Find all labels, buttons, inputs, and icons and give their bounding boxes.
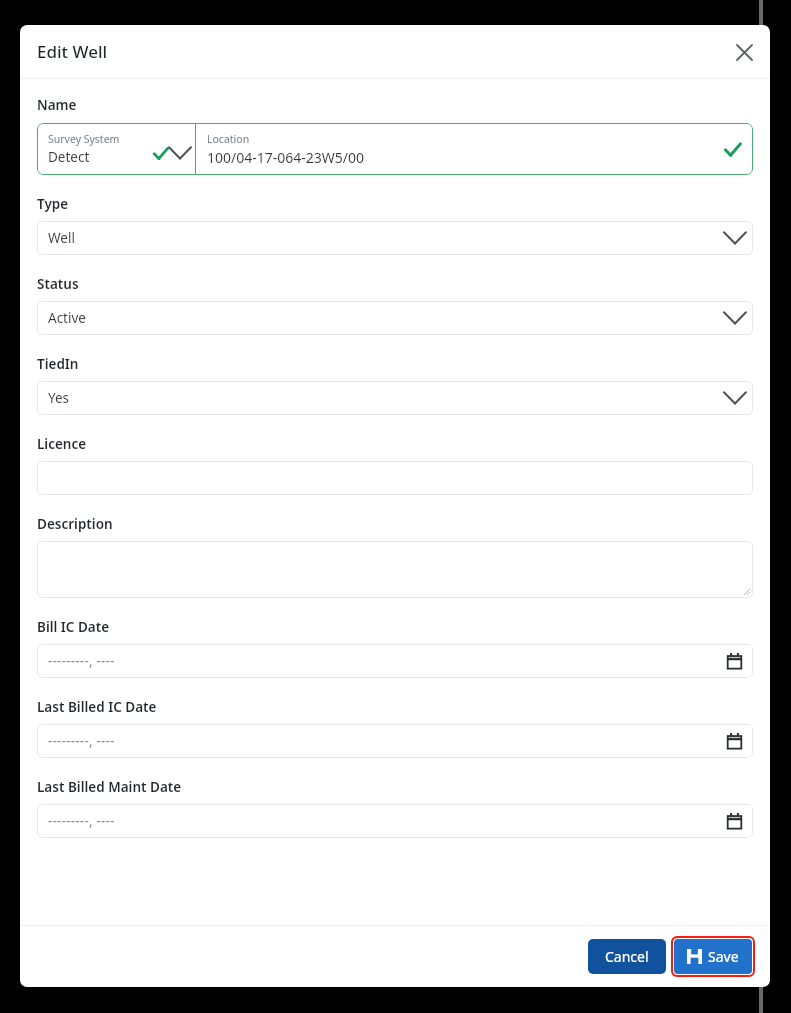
staticText: TiedIn [37, 355, 79, 373]
staticText: ---------, ---- [48, 812, 115, 830]
button[interactable]: Location [196, 123, 753, 175]
staticText: Yes [48, 389, 70, 407]
staticText: Survey System [48, 132, 120, 146]
staticText: Well [48, 229, 75, 247]
staticText: Bill IC Date [37, 618, 110, 636]
staticText: Last Billed Maint Date [37, 778, 182, 796]
button[interactable]: Yes [37, 381, 753, 415]
staticText: 100/04-17-064-23W5/00 [207, 148, 365, 167]
staticText: ---------, ---- [48, 732, 115, 750]
button[interactable] [37, 461, 753, 495]
button[interactable]: Well [37, 221, 753, 255]
button[interactable]: ---------, ---- [37, 724, 753, 758]
staticText: Location [207, 132, 250, 146]
other: Open calendar [726, 653, 743, 670]
staticText: Edit Well [37, 40, 108, 63]
staticText: ---------, ---- [48, 652, 115, 670]
staticText: Type [37, 195, 69, 213]
staticText: Cancel [605, 947, 649, 966]
button[interactable]: Save [674, 939, 752, 974]
button[interactable]: ---------, ---- [37, 644, 753, 678]
button[interactable]: ---------, ---- [37, 804, 753, 838]
staticText: Save [708, 947, 739, 966]
other: Open calendar [726, 813, 743, 830]
staticText: Status [37, 275, 79, 293]
staticText: Description [37, 515, 113, 533]
button[interactable]: Close [728, 36, 760, 68]
staticText: Licence [37, 435, 87, 453]
other: Open calendar [726, 733, 743, 750]
button[interactable]: Cancel [588, 939, 666, 974]
button[interactable]: Survey System [37, 123, 195, 175]
button[interactable] [37, 541, 753, 598]
staticText: Last Billed IC Date [37, 698, 157, 716]
staticText: Active [48, 309, 86, 327]
button[interactable]: Active [37, 301, 753, 335]
staticText: Name [37, 96, 77, 114]
staticText: Detect [48, 148, 90, 166]
